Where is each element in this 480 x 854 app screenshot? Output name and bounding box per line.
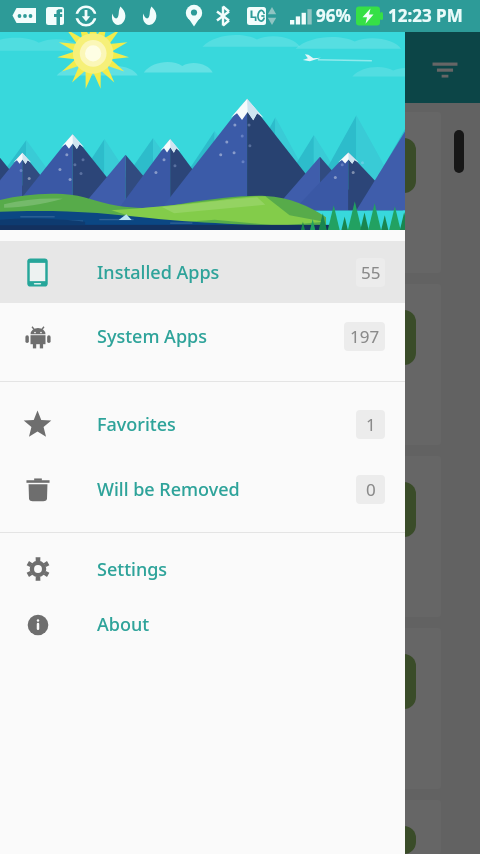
button[interactable]: Installed Apps (0, 241, 405, 303)
button[interactable]: System Apps (0, 303, 405, 370)
button[interactable]: About (0, 597, 405, 652)
staticText: 55 (361, 261, 381, 284)
staticText: Settings (97, 557, 168, 582)
button[interactable]: Settings (0, 541, 405, 597)
staticText: Installed Apps (97, 260, 220, 285)
button[interactable] (9, 800, 441, 854)
button[interactable] (9, 628, 441, 789)
staticText: 12:23 PM (388, 4, 463, 27)
button[interactable] (9, 456, 441, 617)
staticText: Will be Removed (97, 477, 240, 502)
button[interactable] (9, 112, 441, 273)
button[interactable]: Will be Removed (0, 455, 405, 524)
button[interactable] (9, 284, 441, 445)
staticText: System Apps (97, 324, 207, 349)
staticText: 0 (366, 478, 376, 501)
button[interactable]: Filter (422, 45, 468, 91)
staticText: About (97, 612, 150, 637)
staticText: 1 (366, 413, 376, 436)
staticText: 96% (316, 4, 351, 27)
button[interactable]: Favorites (0, 393, 405, 455)
staticText: 197 (350, 325, 380, 348)
staticText: Favorites (97, 412, 176, 437)
